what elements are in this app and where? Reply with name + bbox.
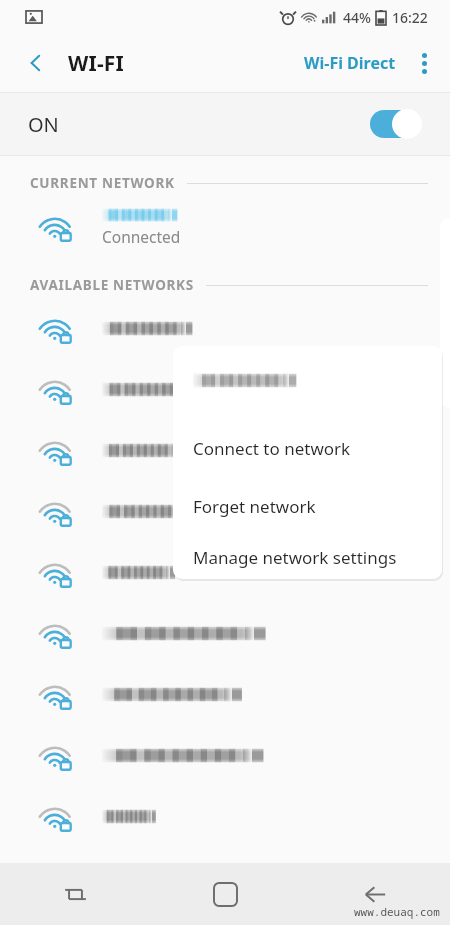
button[interactable] (0, 298, 450, 359)
staticText: www.deuaq.com (354, 904, 440, 919)
button[interactable]: Wi-Fi Direct (298, 42, 402, 84)
staticText: WI-FI (68, 49, 124, 78)
button[interactable] (0, 664, 450, 725)
staticText: Forget network (193, 495, 316, 518)
button[interactable]: Manage network settings (173, 535, 442, 579)
button[interactable]: Add network (0, 847, 450, 908)
staticText: Connect to network (193, 437, 351, 460)
button[interactable] (0, 481, 450, 542)
button[interactable] (0, 786, 450, 847)
staticText: Wi-Fi Direct (304, 52, 396, 74)
button[interactable]: Forget network (173, 477, 442, 535)
staticText: ON (28, 111, 59, 138)
staticText: AVAILABLE NETWORKS (30, 276, 194, 294)
staticText: Manage network settings (193, 546, 397, 569)
staticText: 44% (343, 8, 371, 27)
button[interactable]: Back (14, 41, 58, 85)
button[interactable] (0, 420, 450, 481)
button[interactable] (0, 603, 450, 664)
button[interactable] (0, 725, 450, 786)
button[interactable]: More options (402, 41, 446, 85)
button[interactable]: Back (300, 863, 450, 925)
button[interactable]: Recents (0, 863, 150, 925)
staticText: CURRENT NETWORK (30, 174, 175, 192)
staticText: 16:22 (392, 8, 428, 27)
button[interactable]: ON (0, 93, 450, 155)
button[interactable] (0, 542, 450, 603)
button[interactable]: Home (150, 863, 300, 925)
staticText: Connected (102, 226, 181, 247)
button[interactable]: Connect to network (173, 419, 442, 477)
button[interactable] (0, 359, 450, 420)
button[interactable]: Connected (0, 196, 450, 258)
